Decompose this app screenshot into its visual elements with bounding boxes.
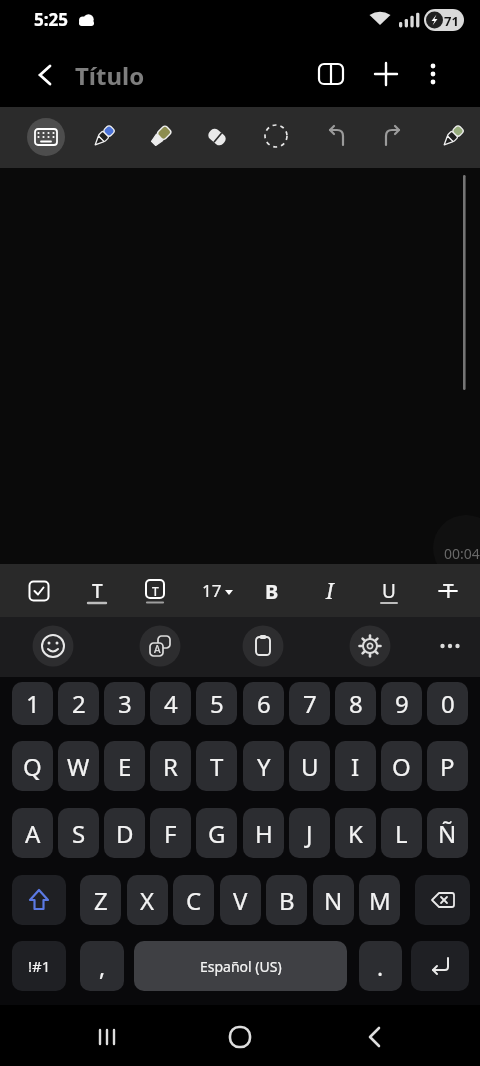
button[interactable]: Ñ (427, 808, 468, 858)
staticText: Ñ (438, 817, 457, 850)
button[interactable]: C (173, 875, 214, 925)
button[interactable]: M (359, 875, 400, 925)
button[interactable]: U (369, 571, 409, 611)
button[interactable]: T (77, 571, 117, 611)
button[interactable]: X (127, 875, 168, 925)
staticText: 6 (257, 687, 271, 720)
button[interactable]: V (220, 875, 261, 925)
button[interactable]: 4 (150, 682, 191, 725)
staticText: T (210, 750, 224, 783)
button[interactable]: B (266, 875, 307, 925)
button[interactable] (12, 875, 66, 925)
button[interactable] (218, 1015, 262, 1059)
button[interactable] (411, 941, 469, 991)
button[interactable]: I (310, 571, 350, 611)
button[interactable] (241, 624, 285, 668)
button[interactable]: 6 (243, 682, 284, 725)
button[interactable] (415, 875, 470, 925)
button[interactable] (430, 115, 474, 159)
button[interactable] (348, 624, 392, 668)
staticText: B (265, 578, 279, 605)
staticText: Español (US) (200, 957, 282, 976)
button[interactable]: B (252, 571, 292, 611)
button[interactable] (22, 53, 66, 97)
staticText: 17 (202, 579, 222, 602)
button[interactable]: G (196, 808, 237, 858)
button[interactable]: 2 (58, 682, 99, 725)
staticText: T (152, 583, 159, 599)
staticText: A (25, 817, 41, 850)
staticText: M (369, 884, 391, 917)
button[interactable]: !#1 (12, 941, 66, 991)
button[interactable]: Español (US) (134, 941, 347, 991)
button[interactable]: P (427, 741, 468, 791)
staticText: F (164, 817, 177, 850)
button[interactable]: . (359, 941, 402, 991)
button[interactable]: 9 (381, 682, 422, 725)
button[interactable] (254, 115, 298, 159)
button[interactable]: A (138, 624, 182, 668)
button[interactable] (81, 115, 125, 159)
button[interactable]: K (335, 808, 376, 858)
staticText: . (377, 951, 384, 982)
staticText: J (306, 817, 313, 850)
button[interactable]: O (381, 741, 422, 791)
staticText: 2 (72, 687, 86, 720)
button[interactable]: U (289, 741, 330, 791)
staticText: N (324, 884, 343, 917)
button[interactable]: W (58, 741, 99, 791)
button[interactable] (31, 624, 75, 668)
button[interactable]: 0 (427, 682, 468, 725)
staticText: 3 (118, 687, 132, 720)
button[interactable]: T (135, 571, 175, 611)
staticText: V (233, 884, 248, 917)
button[interactable] (138, 115, 182, 159)
staticText: , (99, 951, 106, 982)
button[interactable]: A (12, 808, 53, 858)
button[interactable]: R (150, 741, 191, 791)
button[interactable] (364, 52, 408, 96)
staticText: P (440, 750, 455, 783)
button[interactable]: 3 (104, 682, 145, 725)
staticText: H (255, 817, 273, 850)
button[interactable]: T (196, 741, 237, 791)
button[interactable] (195, 115, 239, 159)
button[interactable]: 1 (12, 682, 53, 725)
button[interactable]: S (58, 808, 99, 858)
staticText: E (118, 750, 132, 783)
button[interactable] (430, 626, 470, 666)
staticText: 0 (441, 687, 455, 720)
button[interactable]: 7 (289, 682, 330, 725)
button[interactable] (314, 115, 358, 159)
button[interactable]: I (335, 741, 376, 791)
button[interactable]: 5 (196, 682, 237, 725)
button[interactable]: T (428, 571, 468, 611)
staticText: 71 (444, 12, 459, 30)
button[interactable]: , (80, 941, 124, 991)
button[interactable]: D (104, 808, 145, 858)
button[interactable]: H (243, 808, 284, 858)
button[interactable]: 8 (335, 682, 376, 725)
button[interactable] (85, 1015, 129, 1059)
button[interactable]: L (381, 808, 422, 858)
button[interactable]: 17 (192, 564, 242, 617)
button[interactable] (353, 1015, 397, 1059)
button[interactable]: Q (12, 741, 53, 791)
button[interactable] (309, 52, 353, 96)
button[interactable]: J (289, 808, 330, 858)
staticText: K (348, 817, 363, 850)
button[interactable]: Z (80, 875, 121, 925)
button[interactable]: Título (75, 59, 145, 92)
button[interactable] (371, 115, 415, 159)
staticText: I (326, 577, 334, 606)
staticText: 7 (303, 687, 317, 720)
button[interactable]: Y (243, 741, 284, 791)
staticText: W (67, 750, 90, 783)
button[interactable] (411, 52, 455, 96)
button[interactable] (24, 115, 68, 159)
button[interactable]: N (313, 875, 354, 925)
button[interactable]: E (104, 741, 145, 791)
button[interactable]: F (150, 808, 191, 858)
staticText: T (443, 578, 454, 604)
button[interactable] (19, 571, 59, 611)
